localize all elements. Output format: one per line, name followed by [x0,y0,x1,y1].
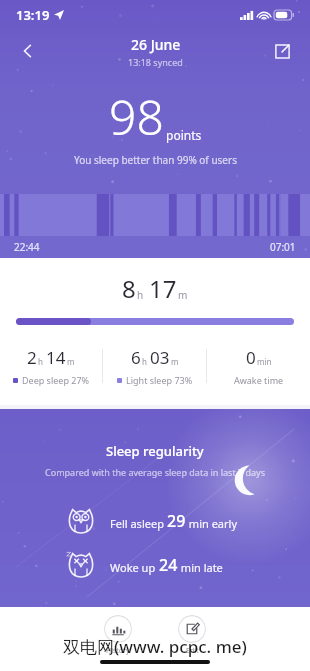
staticText: 0 [246,346,256,369]
staticText: 8 [122,272,136,305]
staticText: min [257,356,272,367]
button[interactable]: Fell asleep [66,506,294,536]
button[interactable]: 2 [0,346,102,386]
button[interactable]: Woke up [66,550,294,580]
button[interactable]: Back [8,31,48,71]
staticText: min early [186,516,238,531]
staticText: min late [178,560,223,575]
staticText: h [137,288,144,302]
staticText: 6 [131,346,141,369]
staticText: Fell asleep [110,516,167,531]
button[interactable]: 0 [207,346,310,386]
staticText: 26 June [131,35,181,54]
staticText: 14 [46,346,66,369]
staticText: 07:01 [270,240,296,254]
staticText: m [171,356,179,367]
staticText: Deep sleep 27% [22,374,90,386]
staticText: 03 [150,346,170,369]
staticText: 2 [27,346,37,369]
staticText: 17 [149,272,177,305]
staticText: Woke up [110,560,159,575]
staticText: Light sleep 73% [126,374,193,386]
button[interactable]: 6 [103,346,206,386]
staticText: You sleep better than 99% of users [74,153,237,167]
staticText: Awake time [234,374,284,386]
staticText: 13:19 [16,6,50,24]
button[interactable]: Edit [174,615,210,656]
staticText: m [67,356,75,367]
staticText: 98 [109,84,164,149]
staticText: h [38,356,43,367]
staticText: 24 [159,554,178,576]
button[interactable]: Share [262,31,302,71]
staticText: 双电网(www. pcpc. me) [63,635,247,658]
staticText: h [142,356,147,367]
staticText: Sleep regularity [106,442,204,460]
staticText: m [178,288,188,302]
staticText: 29 [167,510,186,532]
staticText: 13:18 synced [128,56,183,68]
staticText: points [166,127,202,143]
staticText: Edit [186,646,199,656]
staticText: Compared with the average sleep data in … [45,466,265,478]
staticText: 22:44 [14,240,40,254]
staticText: History [106,646,130,656]
button[interactable]: History [100,615,136,656]
